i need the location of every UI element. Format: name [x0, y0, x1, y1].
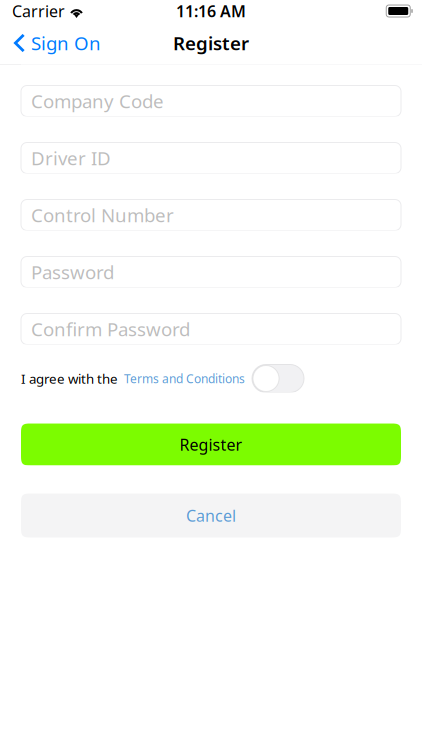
staticText: Sign On	[31, 31, 101, 55]
button[interactable]: Control Number	[21, 199, 401, 230]
staticText: Confirm Password	[31, 317, 190, 341]
staticText: Driver ID	[31, 146, 111, 170]
button[interactable]: Cancel	[21, 493, 401, 537]
staticText: Company Code	[31, 89, 164, 113]
staticText: Register	[173, 31, 249, 55]
staticText: Terms and Conditions	[124, 370, 245, 386]
button[interactable]: Company Code	[21, 85, 401, 116]
staticText: 11:16 AM	[176, 0, 246, 22]
staticText: Password	[31, 260, 114, 284]
staticText: Control Number	[31, 203, 174, 227]
button[interactable]: Confirm Password	[21, 313, 401, 344]
button[interactable]: Register	[21, 423, 401, 465]
staticText: I agree with the	[21, 370, 118, 387]
button[interactable]: Sign On	[6, 23, 109, 63]
button[interactable]: Agree to terms and conditions	[252, 364, 304, 392]
button[interactable]: Terms and Conditions	[124, 370, 245, 386]
button[interactable]: Driver ID	[21, 142, 401, 173]
staticText: Cancel	[186, 505, 236, 526]
staticText: Carrier	[12, 0, 65, 22]
staticText: Register	[179, 434, 242, 455]
button[interactable]: Password	[21, 256, 401, 287]
